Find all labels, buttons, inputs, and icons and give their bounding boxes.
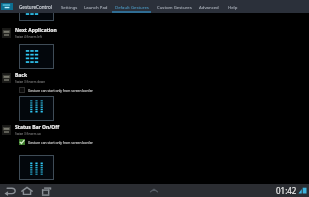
button[interactable]: Gesture preview [19, 96, 54, 121]
button[interactable]: Gesture preview [19, 155, 54, 180]
button[interactable]: Settings [58, 0, 80, 13]
button[interactable]: Default Gestures [112, 0, 151, 13]
button[interactable]: Gesture can start only from screen borde… [19, 86, 93, 94]
staticText: GestureControl [19, 4, 52, 10]
button[interactable]: Gesture preview [19, 13, 54, 21]
staticText: Default Gestures [115, 4, 149, 10]
staticText: 01:42 [276, 185, 297, 196]
staticText: Status Bar On/Off [15, 124, 60, 131]
staticText: Gesture can start only from screen borde… [28, 88, 93, 92]
staticText: Gesture can start only from screen borde… [28, 140, 93, 144]
staticText: Swipe 3 fingers down [15, 80, 46, 83]
staticText: Next Application [15, 27, 57, 34]
button[interactable]: Advanced [196, 0, 222, 13]
staticText: Back [15, 72, 28, 79]
button[interactable]: Home [19, 184, 34, 197]
button[interactable]: Status Bar On/Off [0, 124, 309, 135]
button[interactable]: Gesture preview [19, 44, 54, 69]
button[interactable]: Show hidden icons [146, 184, 162, 197]
button[interactable]: Gesture can start only from screen borde… [19, 138, 93, 146]
staticText: Swipe 3 fingers up [15, 132, 41, 135]
button[interactable]: 01:42 [276, 185, 309, 196]
button[interactable]: Back [2, 184, 17, 197]
button[interactable]: Back [0, 72, 309, 83]
button[interactable]: Custom Gestures [153, 0, 195, 13]
staticText: Settings [61, 4, 78, 10]
button[interactable]: GestureControl [17, 0, 54, 13]
staticText: Launch Pad [84, 4, 108, 10]
staticText: Custom Gestures [157, 4, 192, 10]
button[interactable]: App icon [1, 3, 13, 10]
staticText: Help [228, 4, 238, 10]
button[interactable]: Recents [38, 184, 53, 197]
button[interactable]: Launch Pad [81, 0, 110, 13]
button[interactable]: Help [224, 0, 241, 13]
staticText: Advanced [199, 4, 219, 10]
button[interactable]: Next Application [0, 27, 309, 38]
staticText: Swipe 4 fingers left [15, 35, 42, 38]
